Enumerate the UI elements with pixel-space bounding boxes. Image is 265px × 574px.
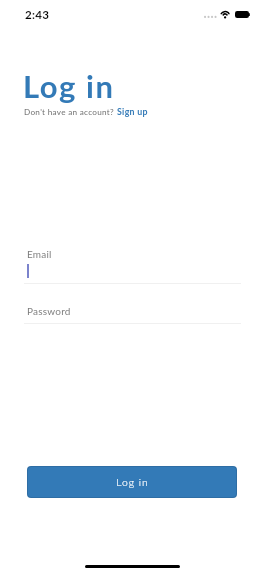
- staticText: Don't have an account?: [24, 107, 115, 117]
- staticText: Log in: [23, 67, 115, 104]
- button[interactable]: Password: [24, 302, 241, 324]
- staticText: Sign up: [117, 106, 148, 117]
- other: Wi-Fi: [219, 9, 232, 20]
- button[interactable]: Sign up: [115, 104, 146, 115]
- staticText: Password: [27, 305, 71, 317]
- button[interactable]: Log in: [28, 467, 236, 497]
- staticText: Log in: [116, 476, 149, 488]
- staticText: Email: [27, 248, 52, 260]
- staticText: 2:43: [25, 8, 50, 22]
- button[interactable]: Email: [24, 245, 241, 284]
